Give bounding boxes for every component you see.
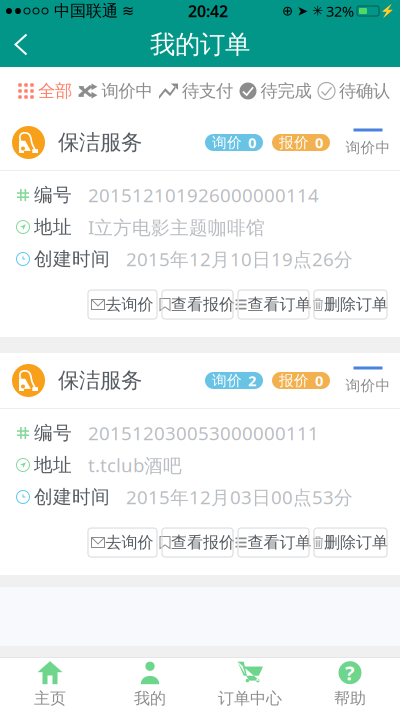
staticText: 2015年12月03日00点53分	[126, 485, 353, 509]
staticText: 待完成	[260, 80, 311, 102]
staticText: ⊕ ➤ ✳	[282, 3, 323, 18]
staticText: ⚡	[380, 4, 395, 18]
staticText: 查看订单	[247, 533, 311, 552]
staticText: 编号	[34, 183, 72, 206]
staticText: 中国联通	[54, 1, 118, 21]
button[interactable]: 待完成	[239, 67, 311, 115]
staticText: 我的	[134, 689, 166, 708]
staticText: 全部	[38, 80, 72, 102]
staticText: 20:42	[188, 0, 228, 22]
staticText: 待支付	[182, 80, 233, 102]
staticText: 0	[315, 371, 323, 390]
staticText: 地址	[34, 215, 72, 238]
staticText: 创建时间	[34, 247, 110, 270]
button[interactable]: 去询价	[88, 290, 157, 319]
staticText: ?	[345, 659, 355, 686]
button[interactable]: 待支付	[159, 67, 233, 115]
staticText: 询价中	[345, 138, 390, 156]
staticText: 询价中	[345, 376, 390, 394]
staticText: 订单中心	[218, 689, 282, 708]
staticText: 询价	[212, 371, 242, 389]
staticText: 查看订单	[247, 295, 311, 314]
staticText: 2015年12月10日19点26分	[126, 247, 353, 271]
staticText: 2	[248, 371, 256, 390]
staticText: 我的订单	[150, 29, 250, 60]
button[interactable]: 主页	[0, 658, 100, 711]
button[interactable]: 询价中	[78, 67, 152, 115]
staticText: 去询价	[105, 533, 153, 552]
staticText: 待确认	[339, 80, 390, 102]
button[interactable]: 订单中心	[200, 658, 300, 711]
staticText: 编号	[34, 421, 72, 444]
button[interactable]: 去询价	[88, 528, 157, 557]
staticText: t.tclub酒吧	[88, 453, 182, 477]
staticText: 查看报价	[171, 295, 235, 314]
button[interactable]: 我的	[100, 658, 200, 711]
button[interactable]: 查看订单	[238, 290, 309, 319]
staticText: I立方电影主题咖啡馆	[88, 215, 265, 239]
staticText: 帮助	[334, 689, 366, 708]
staticText: 主页	[34, 689, 66, 708]
staticText: 删除订单	[324, 295, 388, 314]
button[interactable]: 删除订单	[314, 528, 387, 557]
staticText: 去询价	[105, 295, 153, 314]
button[interactable]: 全部	[18, 67, 72, 115]
staticText: 保洁服务	[58, 129, 142, 156]
button[interactable]: 查看报价	[162, 290, 233, 319]
staticText: 201512101926000000114	[88, 183, 319, 207]
staticText: ≋	[122, 3, 134, 19]
staticText: 删除订单	[324, 533, 388, 552]
staticText: 查看报价	[171, 533, 235, 552]
staticText: 询价	[212, 133, 242, 151]
button[interactable]: 查看订单	[238, 528, 309, 557]
button[interactable]: 查看报价	[162, 528, 233, 557]
button[interactable]: Back	[0, 22, 42, 66]
button[interactable]: 删除订单	[314, 290, 387, 319]
staticText: 0	[315, 133, 323, 152]
staticText: 报价	[279, 133, 309, 151]
staticText: 创建时间	[34, 485, 110, 508]
staticText: 201512030053000000111	[88, 421, 319, 445]
button[interactable]: 待确认	[318, 67, 390, 115]
staticText: 32%	[326, 1, 354, 21]
staticText: 报价	[279, 371, 309, 389]
staticText: 保洁服务	[58, 367, 142, 394]
button[interactable]: ?	[300, 658, 400, 711]
staticText: 0	[248, 133, 256, 152]
staticText: 地址	[34, 453, 72, 476]
staticText: 询价中	[101, 80, 152, 102]
